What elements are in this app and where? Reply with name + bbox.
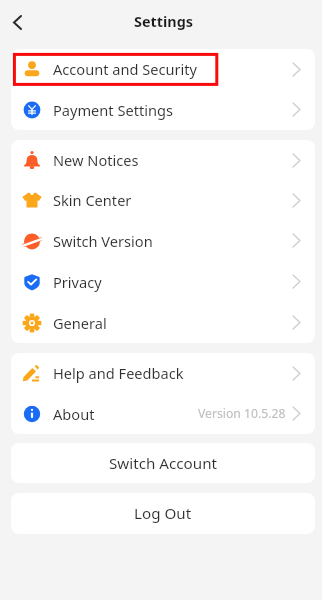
staticText: Privacy: [53, 272, 102, 292]
button[interactable]: Switch Account: [11, 443, 315, 483]
button[interactable]: Payment Settings: [11, 89, 315, 130]
staticText: Payment Settings: [53, 100, 173, 120]
button[interactable]: Back: [0, 4, 35, 40]
staticText: Log Out: [134, 503, 192, 524]
button[interactable]: Switch Version: [11, 220, 315, 261]
staticText: Skin Center: [53, 190, 132, 210]
staticText: Switch Account: [109, 453, 218, 474]
button[interactable]: Account and Security: [11, 49, 315, 89]
button[interactable]: Log Out: [11, 493, 315, 534]
button[interactable]: New Notices: [11, 140, 315, 180]
staticText: About: [53, 404, 95, 424]
button[interactable]: Help and Feedback: [11, 353, 315, 393]
button[interactable]: Skin Center: [11, 180, 315, 220]
staticText: Switch Version: [53, 231, 153, 251]
button[interactable]: About: [11, 393, 315, 434]
button[interactable]: Privacy: [11, 261, 315, 302]
staticText: General: [53, 313, 107, 333]
staticText: New Notices: [53, 150, 139, 170]
staticText: Help and Feedback: [53, 363, 184, 383]
staticText: Settings: [134, 12, 193, 32]
staticText: Account and Security: [53, 59, 198, 79]
button[interactable]: General: [11, 302, 315, 343]
staticText: Version 10.5.28: [198, 405, 286, 422]
